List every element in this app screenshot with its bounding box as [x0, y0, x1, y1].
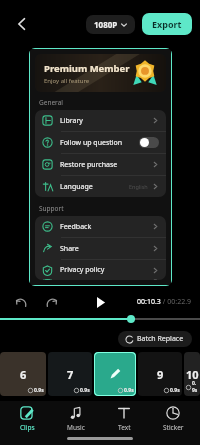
button[interactable]: Share — [35, 238, 166, 259]
staticText: 0.9s — [192, 380, 198, 394]
button[interactable]: Privacy policy — [35, 260, 166, 280]
staticText: General — [39, 98, 63, 107]
button[interactable]: Language — [35, 176, 166, 197]
button[interactable]: Music — [54, 403, 98, 435]
staticText: 00:10.3 — [137, 297, 161, 307]
button[interactable]: 0.9s — [94, 352, 136, 396]
button[interactable]: 10 — [184, 352, 200, 396]
button[interactable]: Back — [8, 10, 36, 38]
button[interactable]: Follow up question — [35, 132, 166, 153]
button[interactable]: 7 — [48, 352, 92, 396]
button[interactable]: 9 — [138, 352, 182, 396]
staticText: Sticker — [163, 423, 184, 432]
button[interactable]: 1080P — [86, 15, 135, 34]
staticText: Support — [39, 204, 64, 213]
staticText: 9 — [157, 367, 164, 382]
button[interactable]: Play — [90, 292, 110, 312]
staticText: 0.9s — [170, 387, 180, 394]
staticText: Privacy policy — [60, 265, 152, 275]
staticText: 0.9s — [80, 387, 90, 394]
button[interactable]: Premium Member — [35, 54, 166, 92]
button[interactable]: Undo — [12, 293, 30, 311]
button[interactable]: Clips — [5, 403, 49, 435]
staticText: Premium Member — [44, 62, 130, 75]
button[interactable]: Seek — [127, 315, 135, 323]
staticText: Library — [60, 116, 152, 126]
button[interactable]: Restore purchase — [35, 154, 166, 175]
staticText: 1080P — [94, 19, 118, 30]
staticText: Follow up question — [60, 138, 139, 148]
button[interactable]: Sticker — [151, 403, 195, 435]
staticText: 10 — [186, 367, 199, 382]
button[interactable]: 6 — [0, 352, 46, 396]
staticText: Enjoy all feature — [44, 77, 90, 85]
staticText: Export — [152, 18, 182, 30]
staticText: Share — [60, 244, 152, 254]
staticText: 7 — [67, 367, 74, 382]
button[interactable]: Export — [142, 13, 192, 35]
staticText: Text — [118, 423, 131, 432]
staticText: Language — [60, 182, 129, 192]
staticText: / 00:22.9 — [161, 297, 192, 307]
button[interactable]: Redo — [42, 293, 60, 311]
staticText: Feedback — [60, 222, 152, 232]
button[interactable]: Batch Replace — [118, 331, 192, 347]
staticText: 0.9s — [124, 387, 134, 394]
staticText: Music — [67, 423, 85, 432]
staticText: 0.9s — [34, 387, 44, 394]
button[interactable]: Toggle — [139, 137, 159, 148]
staticText: Clips — [20, 423, 35, 432]
staticText: Batch Replace — [137, 334, 184, 344]
staticText: English — [129, 183, 148, 190]
button[interactable]: Library — [35, 110, 166, 131]
button[interactable]: Feedback — [35, 216, 166, 237]
button[interactable]: Text — [102, 403, 146, 435]
staticText: 6 — [20, 367, 27, 382]
staticText: Restore purchase — [60, 160, 152, 170]
